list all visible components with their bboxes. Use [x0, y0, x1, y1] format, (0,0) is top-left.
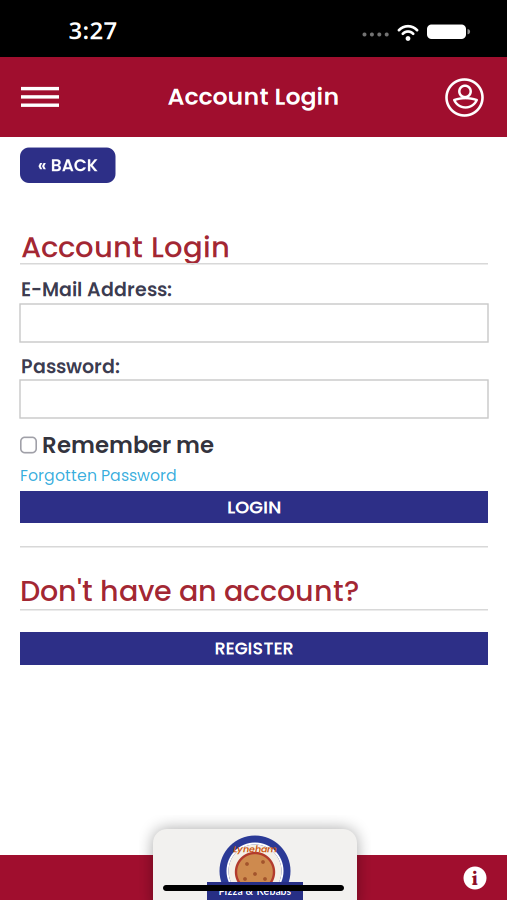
staticText: Forgotten Password [20, 464, 177, 486]
button[interactable]: LOGIN [20, 491, 488, 523]
button[interactable]: Menu [17, 75, 61, 119]
staticText: Remember me [42, 429, 214, 461]
button[interactable]: Account [441, 74, 488, 121]
button[interactable]: Forgotten Password [20, 463, 240, 487]
button[interactable]: Info [463, 866, 486, 889]
staticText: LOGIN [227, 494, 281, 520]
staticText: 3:27 [68, 14, 117, 46]
staticText: Account Login [167, 80, 339, 113]
staticText: Pizza & Kebabs [218, 885, 291, 897]
staticText: i [471, 865, 478, 891]
staticText: E-Mail Address: [21, 276, 172, 303]
staticText: Don't have an account? [20, 571, 359, 611]
button[interactable]: Remember me [20, 428, 214, 462]
staticText: « BACK [38, 153, 98, 177]
staticText: Lyneham [233, 842, 277, 856]
staticText: Account Login [21, 227, 230, 267]
staticText: Password: [21, 353, 120, 380]
button[interactable]: « BACK [20, 147, 115, 183]
button[interactable]: REGISTER [20, 632, 488, 665]
staticText: REGISTER [214, 636, 293, 661]
